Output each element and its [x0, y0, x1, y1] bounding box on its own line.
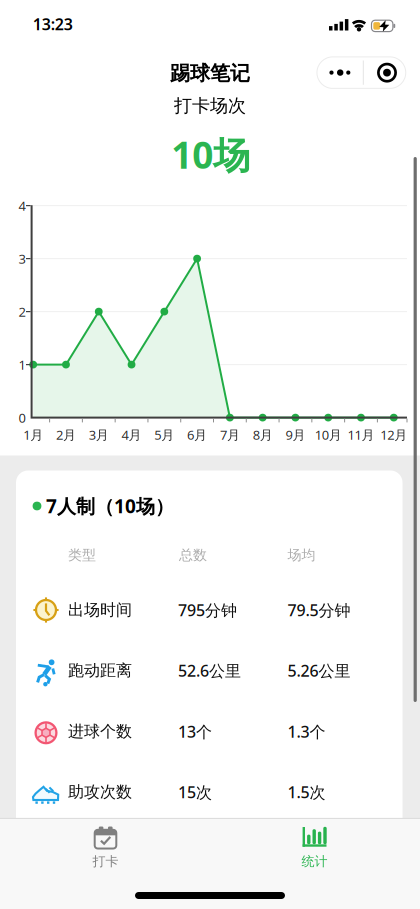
staticText: 打卡 — [92, 853, 118, 869]
staticText: 795分钟 — [178, 599, 237, 621]
staticText: 统计 — [301, 853, 327, 869]
staticText: 6月 — [187, 426, 207, 443]
staticText: 踢球笔记 — [170, 61, 250, 86]
staticText: 2 — [18, 303, 25, 320]
button[interactable]: 统计 — [254, 823, 374, 873]
staticText: 5月 — [154, 426, 174, 443]
staticText: 7月 — [220, 426, 240, 443]
staticText: 类型 — [68, 546, 96, 564]
staticText: 2月 — [56, 426, 76, 443]
button[interactable] — [320, 57, 360, 88]
staticText: 7人制（10场） — [46, 493, 174, 519]
staticText: 1.3个 — [287, 721, 325, 742]
staticText: 5.26公里 — [287, 660, 350, 681]
staticText: 1 — [18, 356, 25, 373]
staticText: 10月 — [315, 426, 342, 443]
staticText: 跑动距离 — [68, 661, 132, 680]
staticText: 1.5次 — [287, 781, 325, 803]
staticText: 3 — [18, 250, 25, 267]
staticText: 4 — [18, 197, 25, 214]
staticText: 总数 — [179, 546, 207, 564]
button[interactable] — [365, 57, 408, 88]
staticText: 4月 — [121, 426, 141, 443]
staticText: 进球个数 — [68, 722, 132, 741]
staticText: 0 — [18, 409, 25, 426]
staticText: 10场 — [171, 130, 250, 179]
staticText: 9月 — [285, 426, 305, 443]
staticText: 8月 — [253, 426, 273, 443]
button[interactable]: 打卡 — [45, 823, 165, 873]
staticText: 助攻次数 — [68, 782, 132, 802]
staticText: 1月 — [23, 426, 43, 443]
staticText: 出场时间 — [68, 600, 132, 620]
staticText: 52.6公里 — [178, 660, 241, 681]
staticText: 11月 — [347, 426, 374, 443]
staticText: 15次 — [178, 781, 212, 803]
staticText: 3月 — [89, 426, 109, 443]
staticText: 场均 — [287, 546, 315, 564]
staticText: 13个 — [178, 721, 212, 742]
staticText: 79.5分钟 — [287, 599, 350, 621]
staticText: 打卡场次 — [174, 95, 246, 117]
staticText: 13:23 — [33, 13, 73, 35]
staticText: 12月 — [380, 426, 407, 443]
